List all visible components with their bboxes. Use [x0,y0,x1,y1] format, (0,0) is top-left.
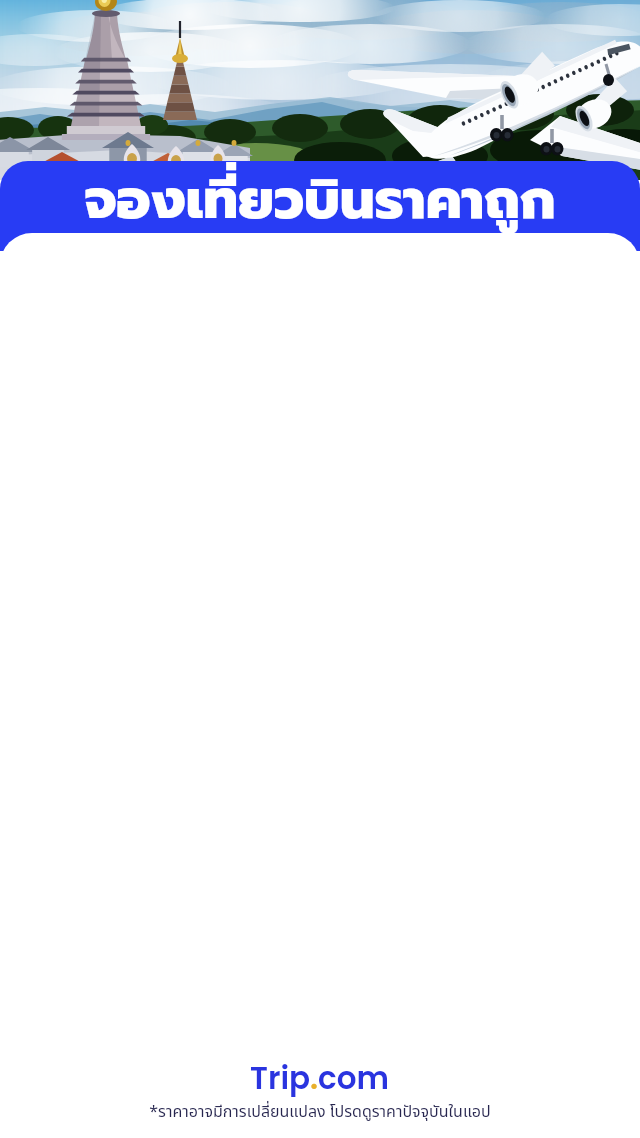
staticText: Trip.com [250,1056,390,1099]
staticText: จองเที่ยวบินราคาถูก [84,159,556,235]
staticText: *ราคาอาจมีการเปลี่ยนแปลง โปรดดูราคาปัจจุ… [149,1100,491,1124]
